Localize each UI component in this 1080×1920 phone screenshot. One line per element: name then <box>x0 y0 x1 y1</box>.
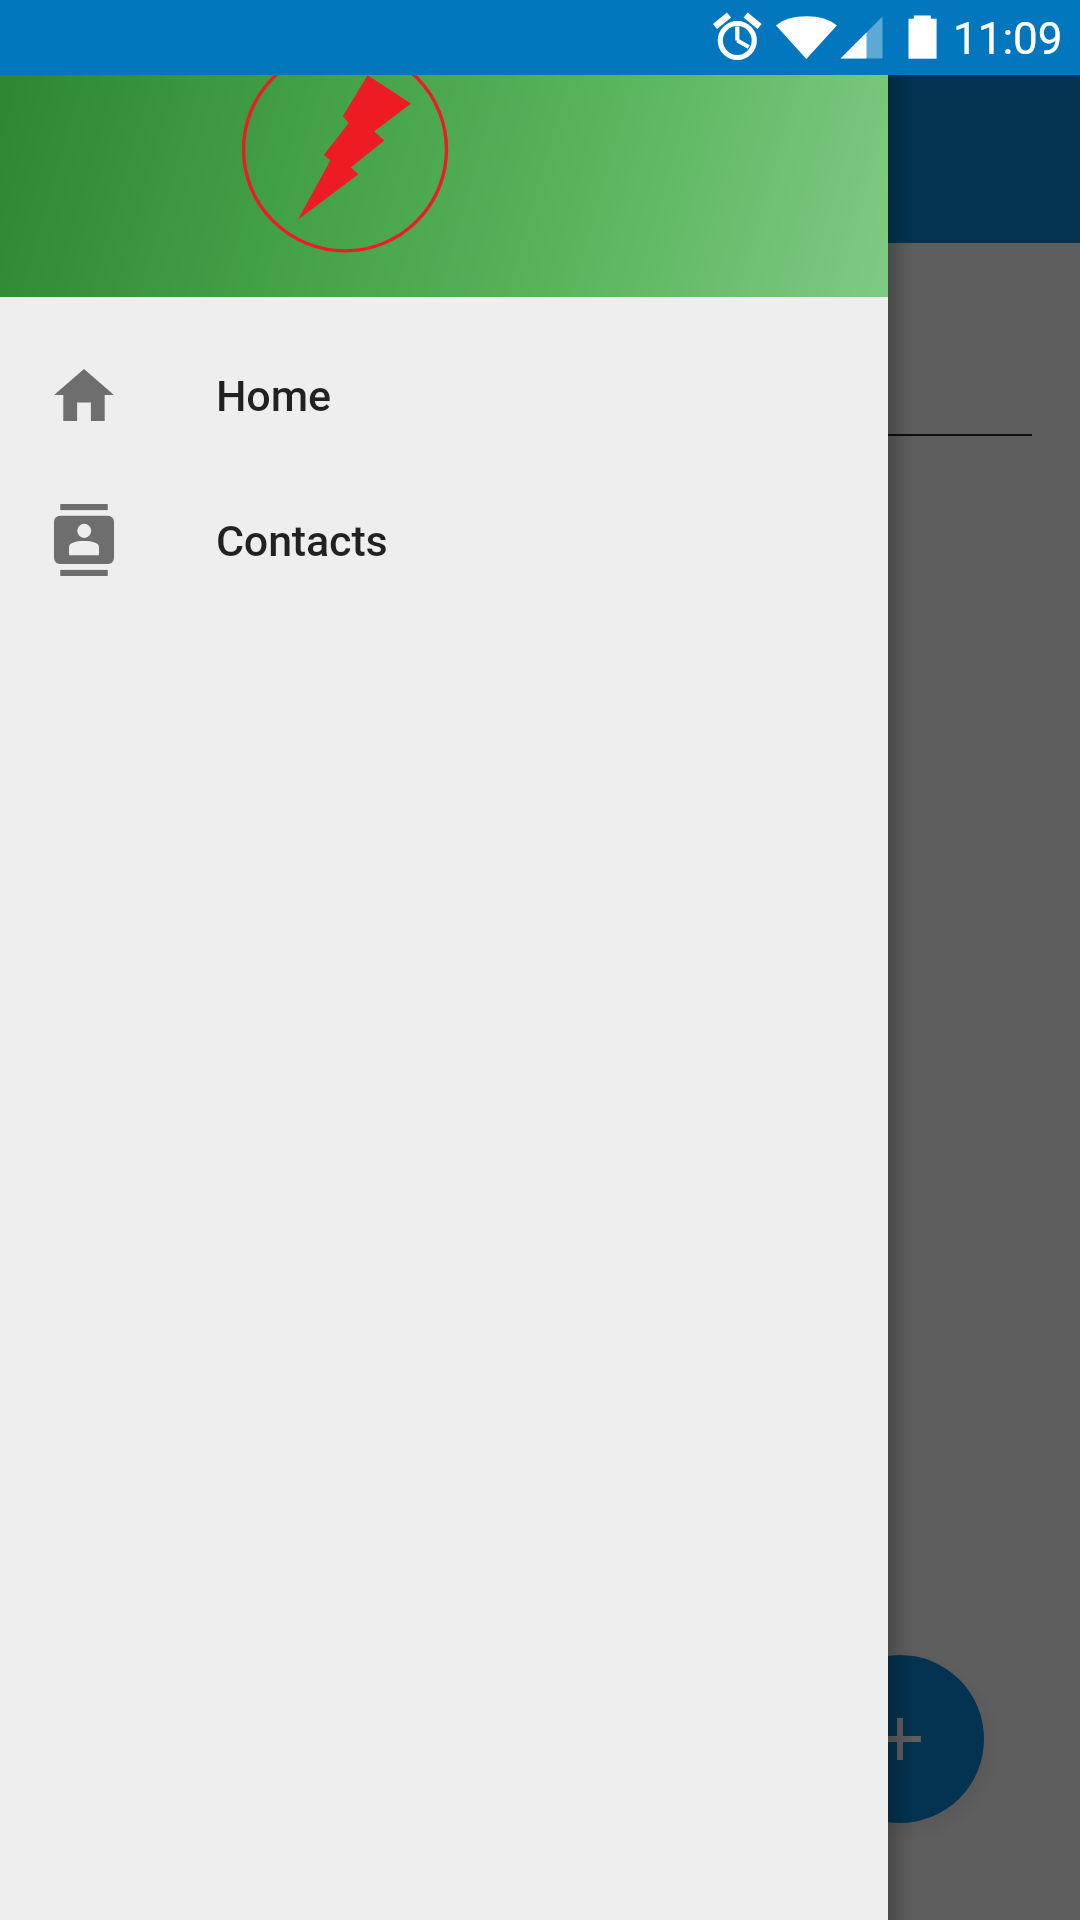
staticText: Home <box>216 371 331 421</box>
button[interactable]: Contacts <box>0 467 888 612</box>
staticText: 11:09 <box>953 13 1063 65</box>
staticText: Contacts <box>216 516 388 566</box>
button[interactable]: Home <box>0 322 888 467</box>
button[interactable]: Add <box>816 1655 984 1823</box>
